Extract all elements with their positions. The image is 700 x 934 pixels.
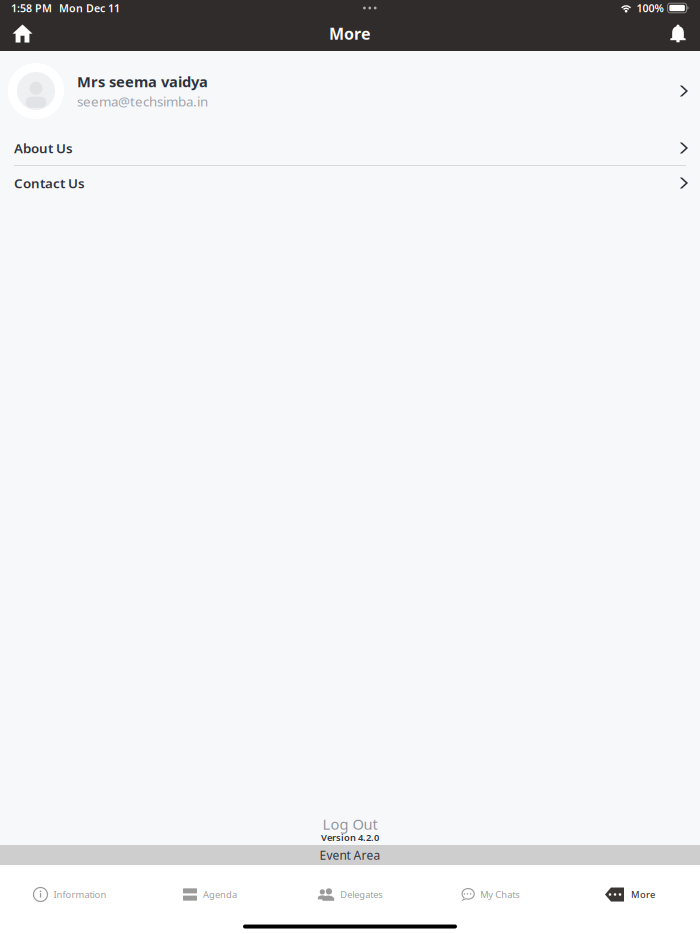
button[interactable]: About Us: [0, 131, 700, 166]
button[interactable]: Notifications: [656, 16, 700, 51]
staticText: More: [329, 23, 371, 44]
button[interactable]: Information: [0, 865, 140, 916]
button[interactable]: My Chats: [420, 865, 560, 916]
button[interactable]: Log Out: [0, 816, 700, 832]
staticText: More: [631, 888, 655, 901]
staticText: About Us: [14, 139, 73, 157]
button[interactable]: Mrs seema vaidya: [0, 51, 700, 131]
staticText: Contact Us: [14, 174, 85, 192]
button[interactable]: Delegates: [280, 865, 420, 916]
staticText: My Chats: [480, 888, 519, 901]
staticText: Agenda: [203, 888, 237, 901]
button[interactable]: Home: [0, 16, 45, 51]
button[interactable]: More: [560, 865, 700, 916]
staticText: Version 4.2.0: [321, 831, 379, 844]
staticText: 1:58 PM: [11, 1, 52, 15]
staticText: Event Area: [319, 847, 380, 863]
staticText: 100%: [637, 1, 664, 15]
button[interactable]: Agenda: [140, 865, 280, 916]
staticText: Mon Dec 11: [59, 1, 120, 15]
button[interactable]: Contact Us: [0, 166, 700, 201]
staticText: Information: [53, 888, 106, 901]
staticText: Mrs seema vaidya: [77, 72, 208, 91]
staticText: Delegates: [340, 888, 382, 901]
staticText: seema@techsimba.in: [77, 92, 208, 110]
staticText: Log Out: [322, 814, 377, 834]
